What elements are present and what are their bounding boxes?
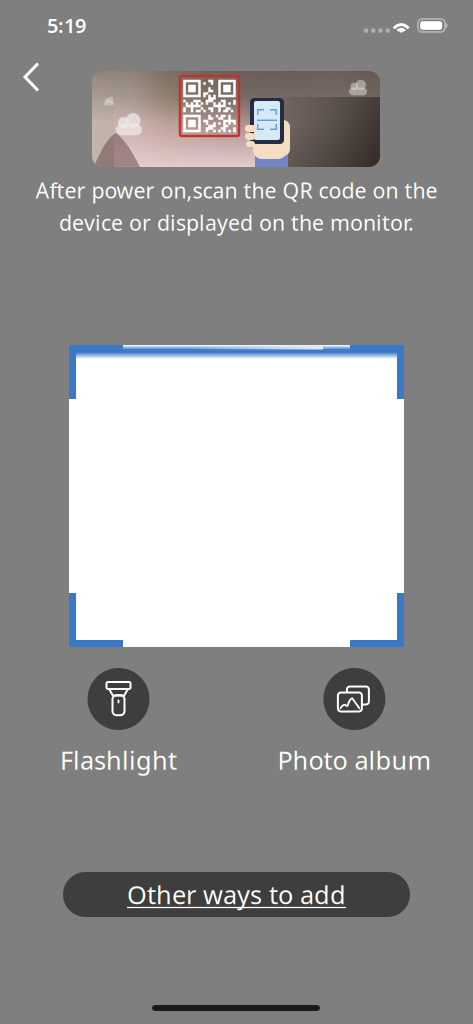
staticText: Flashlight: [60, 743, 177, 777]
staticText: 5:19: [47, 12, 86, 39]
staticText: Other ways to add: [127, 878, 346, 911]
button[interactable]: Photo album: [277, 668, 431, 777]
button[interactable]: Flashlight: [60, 668, 177, 777]
staticText: device or displayed on the monitor.: [59, 208, 414, 237]
button[interactable]: Other ways to add: [63, 872, 410, 917]
staticText: After power on,scan the QR code on the: [35, 176, 437, 204]
button[interactable]: Back: [0, 48, 56, 106]
staticText: Photo album: [277, 743, 431, 777]
